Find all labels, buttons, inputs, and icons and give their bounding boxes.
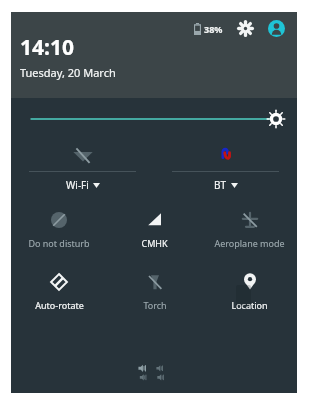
button[interactable]: Brightness — [11, 98, 297, 140]
staticText: 14:10 — [20, 33, 74, 62]
button[interactable]: Wi-Fi — [11, 140, 154, 202]
staticText: Wi-Fi — [66, 178, 89, 192]
staticText: Torch — [143, 299, 167, 311]
button[interactable]: Auto-rotate — [11, 264, 107, 326]
button[interactable]: Battery 38 percent — [192, 20, 225, 38]
staticText: Auto-rotate — [35, 299, 84, 311]
button[interactable]: BT — [154, 140, 297, 202]
staticText: Location — [231, 299, 268, 311]
button[interactable]: Settings — [235, 18, 256, 39]
staticText: Do not disturb — [28, 237, 90, 249]
button[interactable]: Location — [202, 264, 297, 326]
staticText: Aeroplane mode — [214, 237, 285, 249]
button[interactable]: User profile — [266, 18, 287, 39]
staticText: Tuesday, 20 March — [20, 65, 116, 80]
button[interactable]: CMHK — [107, 202, 202, 264]
staticText: BT — [214, 178, 227, 192]
staticText: 38% — [204, 23, 223, 35]
button[interactable]: Do not disturb — [11, 202, 107, 264]
button[interactable]: Aeroplane mode — [202, 202, 297, 264]
staticText: CMHK — [141, 237, 168, 249]
button[interactable]: Torch — [107, 264, 202, 326]
